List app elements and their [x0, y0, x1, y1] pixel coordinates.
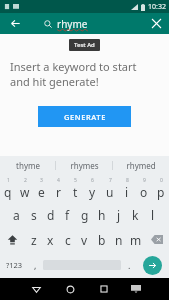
button[interactable]: a: [8, 202, 25, 227]
button[interactable]: Backspace: [144, 227, 169, 252]
button[interactable]: j: [110, 202, 127, 227]
staticText: h: [98, 207, 106, 223]
button[interactable]: d: [42, 202, 59, 227]
button[interactable]: 6: [84, 175, 101, 202]
button[interactable]: 7: [101, 175, 118, 202]
button[interactable]: Search: [143, 256, 162, 275]
staticText: q: [4, 184, 12, 200]
staticText: 9: [143, 177, 146, 184]
button[interactable]: m: [127, 227, 144, 252]
staticText: v: [81, 232, 88, 248]
button[interactable]: s: [25, 202, 42, 227]
staticText: 3: [40, 177, 43, 184]
staticText: d: [47, 207, 55, 223]
staticText: 4: [57, 177, 60, 184]
staticText: Test Ad: [74, 41, 95, 49]
staticText: thyme: [16, 160, 40, 171]
staticText: 5: [74, 177, 77, 184]
button[interactable]: 8: [118, 175, 135, 202]
button[interactable]: 1: [0, 175, 16, 202]
button[interactable]: n: [110, 227, 127, 252]
staticText: f: [65, 207, 70, 223]
staticText: 0: [160, 177, 163, 184]
button[interactable]: z: [25, 227, 42, 252]
button[interactable]: f: [59, 202, 76, 227]
button[interactable]: 5: [67, 175, 84, 202]
staticText: s: [31, 207, 37, 223]
staticText: 7: [109, 177, 112, 184]
staticText: n: [115, 232, 123, 248]
staticText: t: [73, 184, 78, 200]
staticText: rhymed: [126, 160, 156, 171]
button[interactable]: Clear search: [143, 13, 169, 34]
staticText: w: [20, 184, 30, 200]
button[interactable]: ?123: [0, 252, 29, 278]
staticText: a: [13, 207, 20, 223]
button[interactable]: k: [127, 202, 144, 227]
button[interactable]: b: [93, 227, 110, 252]
button[interactable]: ,: [29, 252, 41, 278]
staticText: o: [140, 184, 148, 200]
button[interactable]: rhymed: [113, 156, 169, 175]
button[interactable]: h: [93, 202, 110, 227]
staticText: Insert a keyword to start and hit genera…: [10, 59, 159, 89]
button[interactable]: rhymes: [56, 156, 112, 175]
staticText: g: [81, 207, 89, 223]
button[interactable]: Hide keyboard: [121, 278, 150, 300]
staticText: 2: [24, 177, 27, 184]
staticText: c: [65, 232, 71, 248]
button[interactable]: 2: [16, 175, 33, 202]
button[interactable]: .: [123, 252, 135, 278]
staticText: m: [130, 232, 142, 248]
button[interactable]: Back: [0, 13, 30, 34]
staticText: y: [89, 184, 96, 200]
staticText: z: [31, 232, 37, 248]
button[interactable]: c: [59, 227, 76, 252]
staticText: i: [125, 184, 129, 200]
button[interactable]: 0: [152, 175, 169, 202]
staticText: 1: [7, 177, 10, 184]
button[interactable]: thyme: [0, 156, 55, 175]
staticText: 6: [91, 177, 94, 184]
button[interactable]: GENERATE: [38, 106, 131, 127]
staticText: r: [56, 184, 61, 200]
button[interactable]: Back: [19, 278, 53, 300]
staticText: 10:32: [148, 2, 166, 12]
staticText: l: [151, 207, 155, 223]
staticText: .: [128, 259, 131, 271]
button[interactable]: 4: [50, 175, 67, 202]
button[interactable]: Shift: [0, 227, 25, 252]
staticText: ?123: [6, 260, 23, 270]
staticText: e: [38, 184, 45, 200]
button[interactable]: g: [76, 202, 93, 227]
button[interactable]: Home: [53, 278, 87, 300]
staticText: j: [117, 207, 121, 223]
button[interactable]: v: [76, 227, 93, 252]
button[interactable]: l: [144, 202, 161, 227]
button[interactable]: 3: [33, 175, 50, 202]
button[interactable]: Recent apps: [87, 278, 121, 300]
staticText: u: [106, 184, 114, 200]
staticText: 8: [126, 177, 129, 184]
staticText: x: [47, 232, 54, 248]
button[interactable]: x: [42, 227, 59, 252]
staticText: ,: [34, 259, 37, 271]
button[interactable]: 9: [135, 175, 152, 202]
staticText: b: [98, 232, 106, 248]
button[interactable]: Test Ad: [69, 39, 100, 51]
staticText: rhymes: [70, 160, 99, 171]
staticText: rhyme: [57, 17, 88, 31]
staticText: p: [157, 184, 165, 200]
staticText: k: [132, 207, 139, 223]
staticText: GENERATE: [64, 112, 106, 122]
